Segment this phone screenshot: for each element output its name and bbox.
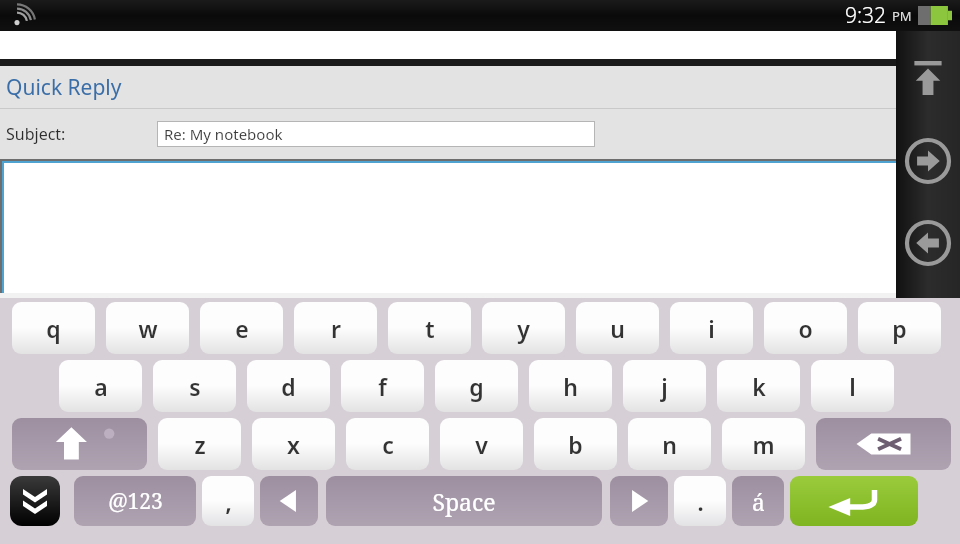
button[interactable]: d xyxy=(247,360,330,412)
button[interactable]: Re: My notebook xyxy=(158,122,594,146)
staticText: p xyxy=(892,313,907,344)
staticText: v xyxy=(475,429,488,460)
button[interactable]: i xyxy=(670,302,753,354)
staticText: j xyxy=(661,371,668,402)
button[interactable]: . xyxy=(674,476,726,526)
staticText: t xyxy=(425,313,435,344)
button[interactable]: w xyxy=(106,302,189,354)
button[interactable]: x xyxy=(252,418,335,470)
staticText: Re: My notebook xyxy=(164,124,283,144)
button[interactable]: g xyxy=(435,360,518,412)
button[interactable]: k xyxy=(717,360,800,412)
button[interactable]: , xyxy=(202,476,254,526)
button[interactable]: c xyxy=(346,418,429,470)
staticText: PM xyxy=(892,7,912,25)
staticText: Subject: xyxy=(6,123,66,145)
staticText: g xyxy=(469,371,484,402)
staticText: s xyxy=(189,371,201,402)
staticText: u xyxy=(610,313,625,344)
button[interactable]: Enter xyxy=(790,476,918,526)
button[interactable]: n xyxy=(628,418,711,470)
button[interactable]: r xyxy=(294,302,377,354)
button[interactable]: Backspace xyxy=(816,418,951,470)
button[interactable]: Shift xyxy=(12,418,147,470)
staticText: z xyxy=(194,429,206,460)
staticText: x xyxy=(287,429,300,460)
button[interactable]: h xyxy=(529,360,612,412)
staticText: , xyxy=(225,485,232,518)
button[interactable]: t xyxy=(388,302,471,354)
staticText: l xyxy=(849,371,856,402)
staticText: h xyxy=(563,371,578,402)
button[interactable]: a xyxy=(59,360,142,412)
staticText: b xyxy=(568,429,583,460)
button[interactable]: Send xyxy=(901,51,955,105)
button[interactable]: Forward xyxy=(901,134,955,188)
button[interactable]: o xyxy=(764,302,847,354)
button[interactable]: p xyxy=(858,302,941,354)
button[interactable]: Space xyxy=(326,476,602,526)
button[interactable]: v xyxy=(440,418,523,470)
button[interactable]: e xyxy=(200,302,283,354)
staticText: Space xyxy=(432,486,496,517)
button[interactable]: j xyxy=(623,360,706,412)
button[interactable]: q xyxy=(12,302,95,354)
staticText: @123 xyxy=(108,487,163,516)
staticText: Quick Reply xyxy=(6,73,122,102)
staticText: 9:32 xyxy=(845,1,887,30)
button[interactable]: @123 xyxy=(74,476,196,526)
button[interactable]: s xyxy=(153,360,236,412)
button[interactable]: l xyxy=(811,360,894,412)
button[interactable]: á xyxy=(732,476,784,526)
staticText: n xyxy=(662,429,677,460)
staticText: c xyxy=(382,429,394,460)
button[interactable]: Move cursor left xyxy=(260,476,318,526)
staticText: . xyxy=(697,485,704,518)
staticText: q xyxy=(46,313,61,344)
button[interactable]: u xyxy=(576,302,659,354)
button[interactable]: m xyxy=(722,418,805,470)
button[interactable]: b xyxy=(534,418,617,470)
button[interactable]: f xyxy=(341,360,424,412)
staticText: o xyxy=(798,313,813,344)
staticText: w xyxy=(138,313,158,344)
staticText: f xyxy=(378,371,387,402)
staticText: a xyxy=(94,371,108,402)
staticText: d xyxy=(281,371,296,402)
staticText: k xyxy=(752,371,766,402)
staticText: i xyxy=(708,313,715,344)
staticText: r xyxy=(331,313,341,344)
staticText: m xyxy=(752,429,775,460)
staticText: á xyxy=(752,486,765,517)
button[interactable]: y xyxy=(482,302,565,354)
button[interactable]: Move cursor right xyxy=(610,476,668,526)
staticText: e xyxy=(235,313,249,344)
button[interactable]: z xyxy=(158,418,241,470)
staticText: y xyxy=(517,313,530,344)
button[interactable]: Hide keyboard xyxy=(10,476,60,526)
button[interactable]: Back xyxy=(901,216,955,270)
